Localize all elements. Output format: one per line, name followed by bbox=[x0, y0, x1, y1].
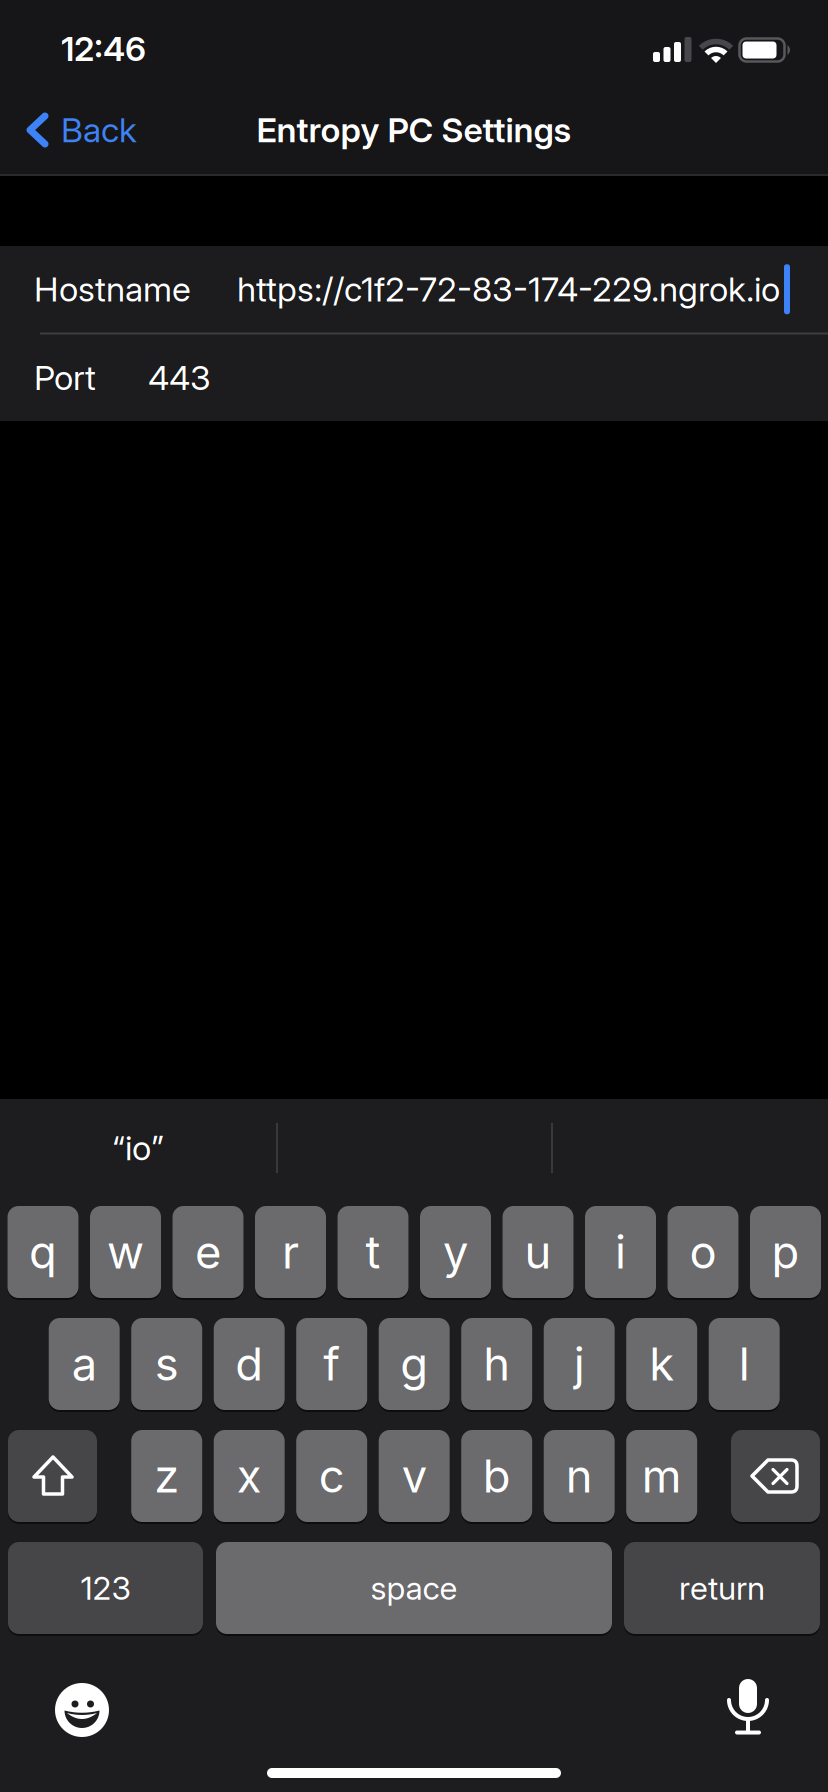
staticText: m bbox=[642, 1449, 682, 1503]
button[interactable]: r bbox=[255, 1205, 326, 1299]
staticText: i bbox=[615, 1225, 626, 1279]
staticText: s bbox=[155, 1337, 179, 1391]
button[interactable]: n bbox=[544, 1429, 615, 1523]
staticText: Hostname bbox=[34, 269, 191, 310]
button[interactable]: d bbox=[214, 1317, 285, 1411]
button[interactable]: c bbox=[296, 1429, 367, 1523]
staticText: Port bbox=[34, 357, 96, 398]
staticText: d bbox=[235, 1337, 263, 1391]
staticText: x bbox=[237, 1449, 262, 1503]
button[interactable]: m bbox=[626, 1429, 697, 1523]
button[interactable]: z bbox=[131, 1429, 202, 1523]
staticText: “io” bbox=[112, 1127, 164, 1168]
button[interactable]: space bbox=[216, 1541, 612, 1635]
staticText: return bbox=[679, 1569, 765, 1607]
staticText: y bbox=[443, 1225, 468, 1279]
button[interactable]: x bbox=[214, 1429, 285, 1523]
button[interactable]: u bbox=[502, 1205, 573, 1299]
button[interactable]: 123 bbox=[8, 1541, 203, 1635]
staticText: Back bbox=[61, 109, 137, 150]
button[interactable]: Shift bbox=[8, 1429, 97, 1523]
staticText: Entropy PC Settings bbox=[256, 109, 571, 150]
button[interactable]: j bbox=[544, 1317, 615, 1411]
staticText: k bbox=[649, 1337, 674, 1391]
staticText: c bbox=[319, 1449, 345, 1503]
staticText: f bbox=[323, 1337, 340, 1391]
button[interactable]: b bbox=[461, 1429, 532, 1523]
staticText: h bbox=[483, 1337, 510, 1391]
button[interactable]: t bbox=[337, 1205, 408, 1299]
staticText: o bbox=[689, 1225, 716, 1279]
staticText: 443 bbox=[148, 357, 211, 398]
staticText: v bbox=[402, 1449, 427, 1503]
button[interactable]: Port bbox=[0, 334, 828, 421]
button[interactable]: Hostname bbox=[0, 246, 828, 332]
staticText: 123 bbox=[80, 1569, 130, 1607]
button[interactable]: e bbox=[172, 1205, 243, 1299]
staticText: u bbox=[524, 1225, 551, 1279]
button[interactable]: q bbox=[7, 1205, 78, 1299]
staticText: 12:46 bbox=[61, 28, 146, 69]
button[interactable]: i bbox=[585, 1205, 656, 1299]
button[interactable]: a bbox=[49, 1317, 120, 1411]
staticText: n bbox=[566, 1449, 593, 1503]
staticText: l bbox=[739, 1337, 750, 1391]
staticText: t bbox=[365, 1225, 380, 1279]
staticText: g bbox=[400, 1337, 428, 1391]
staticText: j bbox=[574, 1337, 585, 1391]
button[interactable]: o bbox=[667, 1205, 738, 1299]
button[interactable]: return bbox=[624, 1541, 820, 1635]
button[interactable]: p bbox=[750, 1205, 821, 1299]
staticText: space bbox=[370, 1569, 457, 1607]
staticText: r bbox=[282, 1225, 299, 1279]
button[interactable]: v bbox=[379, 1429, 450, 1523]
staticText: a bbox=[72, 1337, 97, 1391]
staticText: e bbox=[195, 1225, 221, 1279]
button[interactable]: h bbox=[461, 1317, 532, 1411]
staticText: https://c1f2-72-83-174-229.ngrok.io bbox=[237, 269, 780, 310]
button[interactable]: g bbox=[379, 1317, 450, 1411]
button[interactable]: Back bbox=[0, 86, 137, 174]
button[interactable]: Delete bbox=[731, 1429, 820, 1523]
staticText: z bbox=[154, 1449, 179, 1503]
button[interactable]: “io” bbox=[0, 1099, 276, 1197]
staticText: w bbox=[107, 1225, 144, 1279]
button[interactable]: y bbox=[420, 1205, 491, 1299]
button[interactable]: Emoji bbox=[54, 1682, 110, 1738]
button[interactable]: Dictate bbox=[726, 1678, 770, 1740]
staticText: q bbox=[29, 1225, 57, 1279]
button[interactable]: w bbox=[90, 1205, 161, 1299]
staticText: b bbox=[483, 1449, 511, 1503]
button[interactable]: l bbox=[709, 1317, 780, 1411]
button[interactable]: s bbox=[131, 1317, 202, 1411]
button[interactable]: k bbox=[626, 1317, 697, 1411]
button[interactable]: f bbox=[296, 1317, 367, 1411]
staticText: p bbox=[771, 1225, 799, 1279]
